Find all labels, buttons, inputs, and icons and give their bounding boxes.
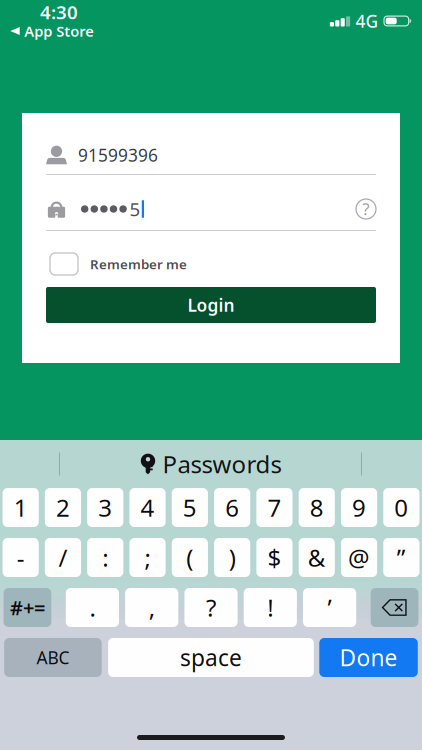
- button[interactable]: space: [108, 638, 314, 677]
- staticText: ): [229, 542, 236, 573]
- button[interactable]: ABC: [4, 638, 102, 677]
- button[interactable]: !: [244, 588, 297, 627]
- staticText: ”: [397, 542, 406, 573]
- staticText: ABC: [36, 646, 69, 669]
- staticText: 4: [141, 492, 155, 523]
- staticText: 0: [394, 492, 408, 523]
- button[interactable]: &: [299, 538, 335, 577]
- staticText: Done: [340, 642, 398, 672]
- button[interactable]: ?: [184, 588, 238, 627]
- staticText: space: [180, 642, 242, 672]
- staticText: Remember me: [90, 255, 187, 273]
- button[interactable]: $: [256, 538, 293, 577]
- button[interactable]: 8: [299, 488, 335, 527]
- button[interactable]: ,: [125, 588, 178, 627]
- staticText: 91599396: [78, 143, 158, 166]
- staticText: ,: [149, 592, 155, 623]
- staticText: @: [348, 542, 370, 573]
- button[interactable]: .: [66, 588, 119, 627]
- staticText: (: [186, 542, 193, 573]
- staticText: &: [308, 542, 326, 573]
- staticText: !: [267, 592, 273, 623]
- button[interactable]: [46, 253, 78, 275]
- button[interactable]: Passwords: [140, 448, 282, 480]
- button[interactable]: ;: [129, 538, 166, 577]
- button[interactable]: @: [341, 538, 377, 577]
- button[interactable]: Done: [319, 638, 418, 677]
- staticText: ?: [206, 592, 216, 623]
- button[interactable]: #+=: [4, 588, 51, 627]
- staticText: 9: [352, 492, 366, 523]
- staticText: .: [89, 592, 95, 623]
- button[interactable]: App Store: [10, 24, 94, 38]
- staticText: ’: [328, 592, 332, 623]
- staticText: Login: [187, 293, 234, 316]
- button[interactable]: 2: [45, 488, 81, 527]
- staticText: ?: [362, 198, 369, 220]
- button[interactable]: 3: [87, 488, 123, 527]
- button[interactable]: 5: [172, 488, 208, 527]
- button[interactable]: 6: [214, 488, 250, 527]
- button[interactable]: 4: [129, 488, 166, 527]
- staticText: Passwords: [163, 448, 282, 480]
- staticText: /: [58, 542, 67, 573]
- button[interactable]: 0: [383, 488, 419, 527]
- staticText: $: [267, 542, 281, 573]
- staticText: 3: [98, 492, 112, 523]
- button[interactable]: ’: [303, 588, 356, 627]
- staticText: 5: [129, 197, 140, 221]
- staticText: #+=: [10, 594, 45, 621]
- button[interactable]: 9: [341, 488, 377, 527]
- staticText: 6: [225, 492, 239, 523]
- button[interactable]: (: [172, 538, 208, 577]
- button[interactable]: :: [87, 538, 123, 577]
- button[interactable]: -: [3, 538, 39, 577]
- staticText: 5: [183, 492, 197, 523]
- button[interactable]: Delete: [371, 588, 418, 627]
- staticText: 4:30: [40, 0, 78, 24]
- button[interactable]: 1: [3, 488, 39, 527]
- staticText: App Store: [24, 21, 94, 41]
- button[interactable]: ): [214, 538, 250, 577]
- staticText: 8: [310, 492, 324, 523]
- staticText: :: [102, 542, 108, 573]
- staticText: 4G: [355, 9, 378, 32]
- button[interactable]: 7: [256, 488, 293, 527]
- staticText: 7: [267, 492, 281, 523]
- staticText: -: [17, 542, 25, 573]
- button[interactable]: ”: [383, 538, 419, 577]
- staticText: 2: [56, 492, 70, 523]
- button[interactable]: /: [45, 538, 81, 577]
- staticText: ;: [145, 542, 151, 573]
- staticText: 1: [14, 492, 28, 523]
- button[interactable]: Login: [46, 287, 376, 323]
